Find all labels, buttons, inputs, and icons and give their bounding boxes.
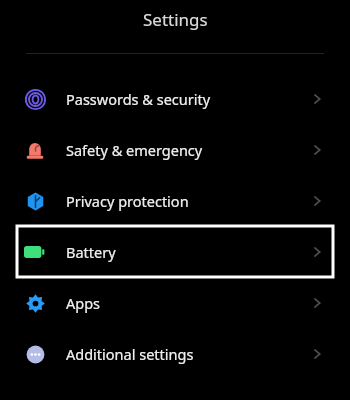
other: Additional settings <box>26 345 45 364</box>
button[interactable]: Passwords and security <box>17 73 333 124</box>
staticText: Apps <box>66 293 101 313</box>
button[interactable]: Safety and emergency <box>17 124 333 175</box>
other: Safety and emergency <box>25 140 45 160</box>
other: Apps <box>26 294 45 313</box>
other: Battery <box>24 241 46 263</box>
other: Privacy protection <box>26 192 45 211</box>
button[interactable]: Apps <box>17 277 333 328</box>
staticText: Privacy protection <box>66 191 189 211</box>
other: Passwords and security <box>25 89 46 110</box>
button[interactable]: Additional settings <box>17 328 333 379</box>
staticText: Passwords & security <box>66 89 211 109</box>
staticText: Additional settings <box>66 344 194 364</box>
staticText: Settings <box>143 8 208 31</box>
button[interactable]: Privacy protection <box>17 175 333 226</box>
staticText: Battery <box>66 242 116 262</box>
button[interactable]: Battery <box>17 226 333 277</box>
staticText: Safety & emergency <box>66 140 203 160</box>
